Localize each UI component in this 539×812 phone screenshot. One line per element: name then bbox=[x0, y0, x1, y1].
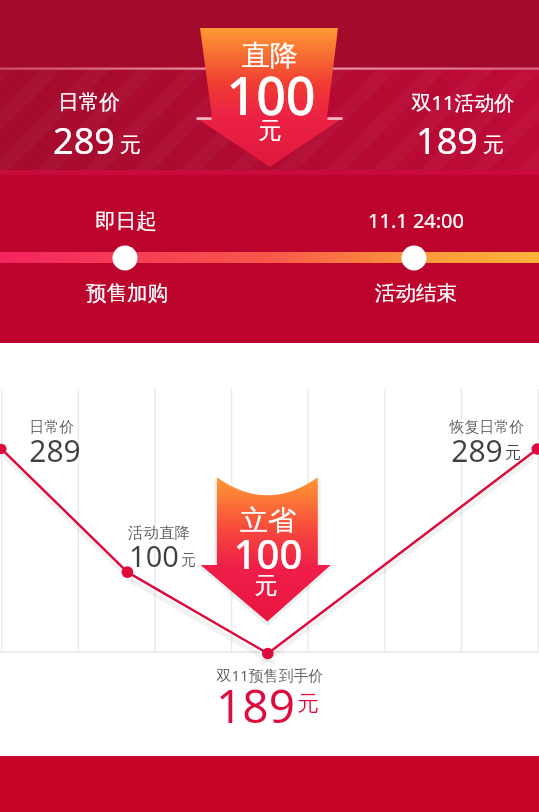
staticText: 100 bbox=[131, 59, 411, 130]
staticText: 289 bbox=[53, 116, 115, 165]
staticText: 元 bbox=[181, 551, 196, 570]
staticText: 日常价 bbox=[0, 418, 192, 437]
staticText: 恢复日常价 bbox=[347, 418, 539, 437]
staticText: 100 bbox=[128, 526, 408, 580]
staticText: 立省 bbox=[128, 503, 408, 538]
staticText: 活动结束 bbox=[276, 280, 539, 306]
staticText: 元 bbox=[483, 132, 504, 158]
staticText: 日常价 bbox=[0, 89, 229, 115]
staticText: 100 bbox=[129, 536, 179, 575]
staticText: 11.1 24:00 bbox=[276, 207, 539, 234]
staticText: 189 bbox=[416, 116, 478, 165]
staticText: 289 bbox=[0, 430, 195, 471]
staticText: 即日起 bbox=[0, 208, 266, 234]
staticText: 双11预售到手价 bbox=[130, 665, 410, 685]
staticText: 活动直降 bbox=[19, 523, 299, 543]
staticText: 预售加购 bbox=[0, 280, 267, 306]
staticText: 直降 bbox=[130, 38, 410, 73]
staticText: 289 bbox=[451, 430, 503, 471]
staticText: 元 bbox=[297, 690, 319, 718]
staticText: 双11活动价 bbox=[323, 89, 539, 116]
staticText: 元 bbox=[130, 116, 410, 145]
staticText: 元 bbox=[126, 571, 406, 600]
staticText: 189 bbox=[216, 674, 295, 737]
staticText: 元 bbox=[120, 132, 141, 158]
staticText: 元 bbox=[505, 443, 521, 463]
